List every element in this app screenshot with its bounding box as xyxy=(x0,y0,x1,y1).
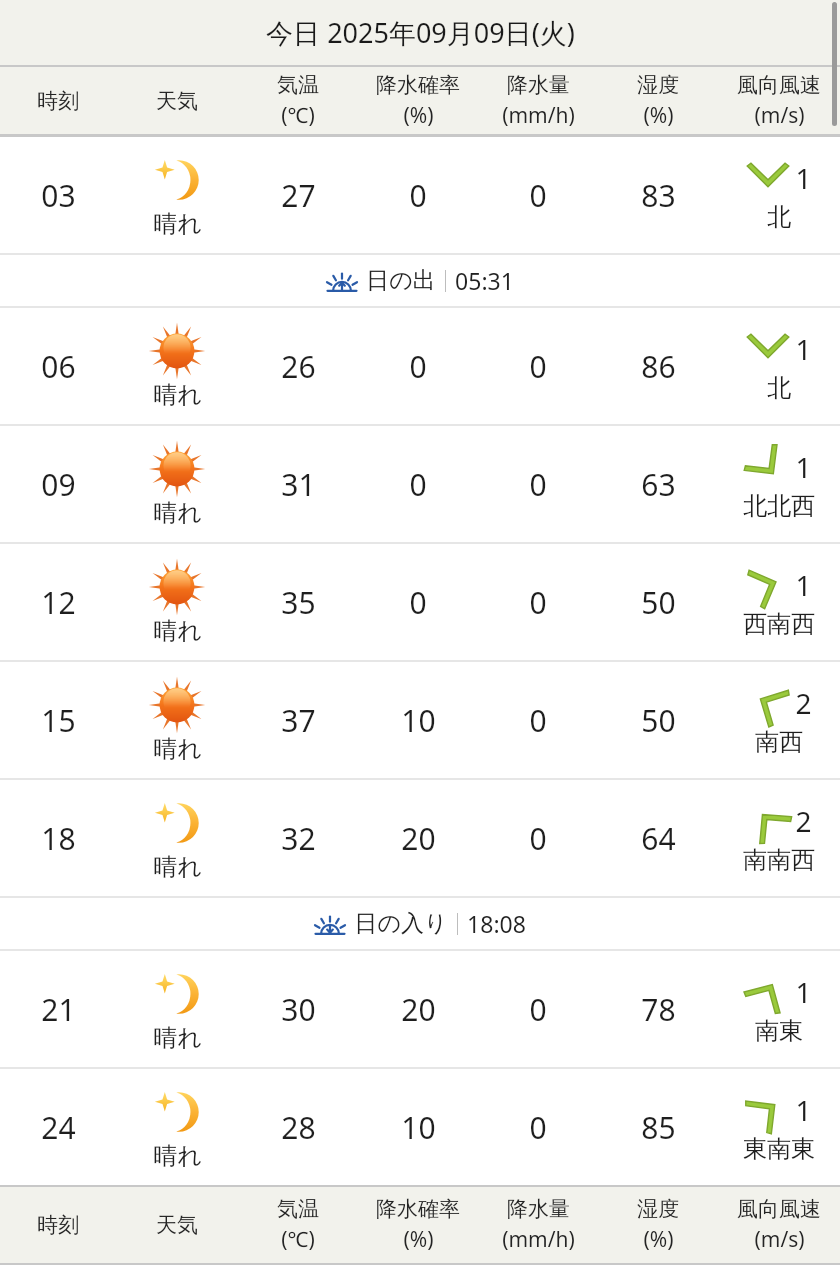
staticText: 0 xyxy=(529,582,547,623)
staticText: 50 xyxy=(641,700,676,741)
button[interactable]: Sunrise xyxy=(0,255,840,306)
staticText: 天気 xyxy=(156,1212,198,1238)
staticText: 晴れ xyxy=(153,380,202,410)
staticText: 南東 xyxy=(755,1016,803,1046)
staticText: 降水確率 xyxy=(376,1196,460,1222)
staticText: (%) xyxy=(403,101,434,130)
staticText: 30 xyxy=(281,989,316,1030)
staticText: 今日 2025年09月09日(火) xyxy=(266,14,575,51)
button[interactable]: 21 xyxy=(0,951,840,1067)
staticText: 24 xyxy=(41,1107,76,1148)
staticText: 晴れ xyxy=(153,498,202,528)
staticText: 26 xyxy=(281,346,316,387)
staticText: 06 xyxy=(41,346,76,387)
staticText: 湿度 xyxy=(637,1196,679,1222)
staticText: 0 xyxy=(529,700,547,741)
staticText: 晴れ xyxy=(153,852,202,882)
button[interactable]: 15 xyxy=(0,662,840,778)
staticText: 03 xyxy=(41,175,76,216)
button[interactable]: 09 xyxy=(0,426,840,542)
staticText: 日の入り xyxy=(354,909,448,938)
staticText: 降水量 xyxy=(507,72,570,98)
staticText: 0 xyxy=(529,175,547,216)
staticText: (mm/h) xyxy=(502,101,575,130)
button[interactable]: 12 xyxy=(0,544,840,660)
staticText: 20 xyxy=(401,989,436,1030)
staticText: 64 xyxy=(641,818,676,859)
staticText: 31 xyxy=(281,464,316,505)
staticText: 日の出 xyxy=(366,266,436,295)
staticText: 28 xyxy=(281,1107,316,1148)
staticText: 15 xyxy=(41,700,76,741)
staticText: 18:08 xyxy=(467,908,526,939)
staticText: 1 xyxy=(795,159,812,197)
staticText: (℃) xyxy=(281,101,315,130)
staticText: 0 xyxy=(529,989,547,1030)
staticText: 50 xyxy=(641,582,676,623)
staticText: 0 xyxy=(529,818,547,859)
staticText: 0 xyxy=(409,464,427,505)
staticText: 風向風速 xyxy=(737,1196,821,1222)
staticText: 1 xyxy=(795,566,812,604)
staticText: 南西 xyxy=(755,727,803,757)
staticText: 0 xyxy=(529,1107,547,1148)
staticText: 晴れ xyxy=(153,1141,202,1171)
staticText: 北 xyxy=(767,373,791,403)
staticText: 湿度 xyxy=(637,72,679,98)
staticText: 時刻 xyxy=(37,88,79,114)
button[interactable]: 今日 2025年09月09日(火) xyxy=(0,0,840,65)
staticText: (m/s) xyxy=(754,101,805,130)
staticText: 北 xyxy=(767,202,791,232)
staticText: 1 xyxy=(795,330,812,368)
staticText: 10 xyxy=(401,700,436,741)
staticText: 0 xyxy=(409,175,427,216)
staticText: 1 xyxy=(795,973,812,1011)
button[interactable]: 06 xyxy=(0,308,840,424)
staticText: 0 xyxy=(409,346,427,387)
staticText: 降水確率 xyxy=(376,72,460,98)
staticText: 18 xyxy=(41,818,76,859)
staticText: 86 xyxy=(641,346,676,387)
staticText: 32 xyxy=(281,818,316,859)
staticText: 63 xyxy=(641,464,676,505)
staticText: 83 xyxy=(641,175,676,216)
staticText: 1 xyxy=(795,1091,812,1129)
staticText: 85 xyxy=(641,1107,676,1148)
staticText: 晴れ xyxy=(153,734,202,764)
staticText: 西南西 xyxy=(743,609,815,639)
staticText: 20 xyxy=(401,818,436,859)
staticText: 降水量 xyxy=(507,1196,570,1222)
staticText: (%) xyxy=(643,1225,674,1254)
staticText: 晴れ xyxy=(153,209,202,239)
staticText: 35 xyxy=(281,582,316,623)
staticText: 東南東 xyxy=(743,1134,815,1164)
staticText: (m/s) xyxy=(754,1225,805,1254)
staticText: 0 xyxy=(529,346,547,387)
staticText: 風向風速 xyxy=(737,72,821,98)
staticText: 南南西 xyxy=(743,845,815,875)
staticText: 晴れ xyxy=(153,616,202,646)
button[interactable]: 03 xyxy=(0,137,840,253)
staticText: 2 xyxy=(795,802,812,840)
other: Sunset xyxy=(315,909,345,939)
staticText: 27 xyxy=(281,175,316,216)
staticText: 0 xyxy=(529,464,547,505)
staticText: 気温 xyxy=(277,1196,319,1222)
staticText: 時刻 xyxy=(37,1212,79,1238)
staticText: 北北西 xyxy=(743,491,815,521)
staticText: 2 xyxy=(795,684,812,722)
staticText: 1 xyxy=(795,448,812,486)
staticText: 78 xyxy=(641,989,676,1030)
staticText: (mm/h) xyxy=(502,1225,575,1254)
staticText: 10 xyxy=(401,1107,436,1148)
other: Sunrise xyxy=(327,266,357,296)
staticText: (%) xyxy=(643,101,674,130)
button[interactable]: 18 xyxy=(0,780,840,896)
staticText: 09 xyxy=(41,464,76,505)
button[interactable]: 24 xyxy=(0,1069,840,1185)
staticText: 気温 xyxy=(277,72,319,98)
staticText: (%) xyxy=(403,1225,434,1254)
staticText: 晴れ xyxy=(153,1023,202,1053)
staticText: 21 xyxy=(41,989,76,1030)
button[interactable]: Sunset xyxy=(0,898,840,949)
